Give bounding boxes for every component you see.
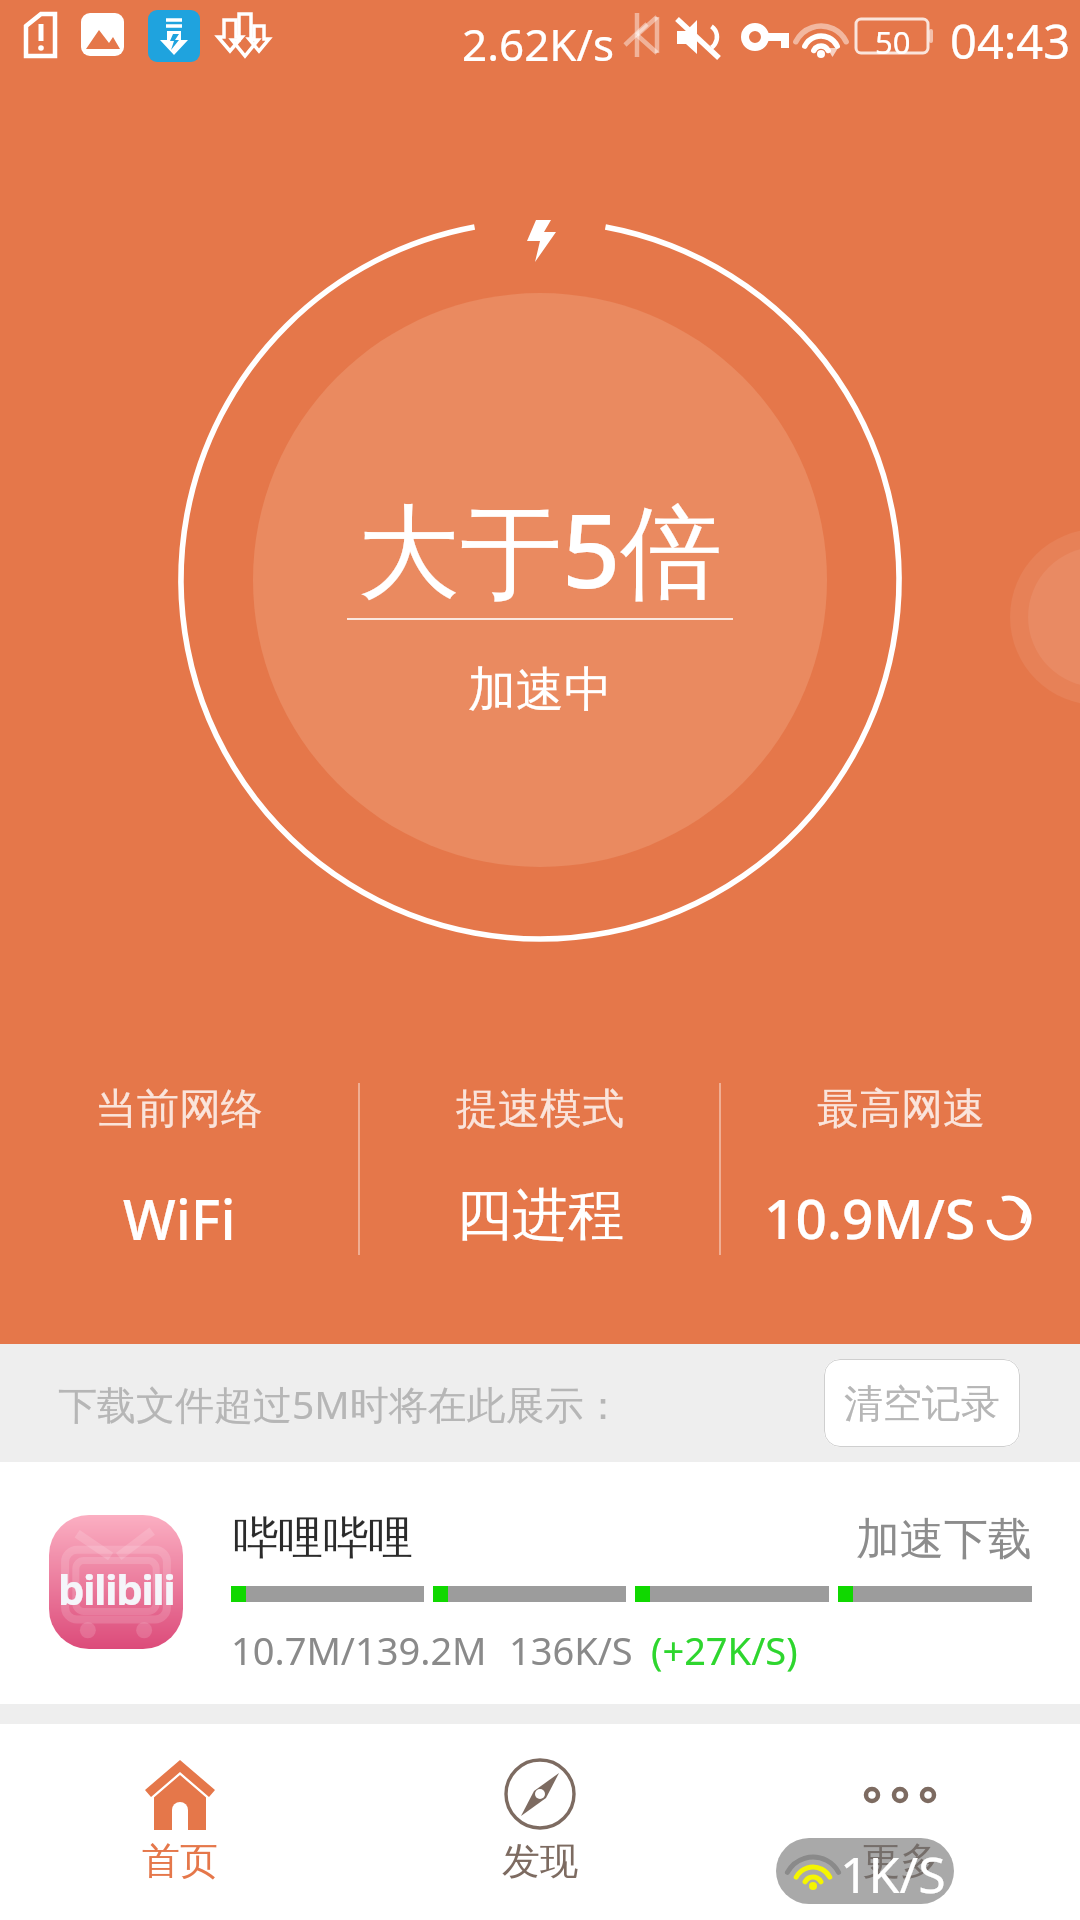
staticText: 发现 <box>502 1837 578 1885</box>
staticText: WiFi <box>123 1180 236 1256</box>
staticText: 四进程 <box>456 1180 624 1251</box>
button[interactable]: 清空记录 <box>824 1359 1020 1447</box>
staticText: 1K/S <box>840 1840 946 1906</box>
staticText: (+27K/S) <box>651 1624 798 1676</box>
staticText: 10.7M/139.2M <box>231 1624 487 1676</box>
staticText: 50 <box>875 21 911 63</box>
staticText: 下载文件超过5M时将在此展示： <box>58 1377 623 1430</box>
staticText: 加速中 <box>468 660 612 720</box>
button[interactable]: 更多 <box>720 1724 1080 1920</box>
staticText: 10.9M/S <box>764 1180 976 1255</box>
button[interactable]: 发现 <box>360 1724 720 1920</box>
staticText: 当前网络 <box>95 1083 263 1136</box>
staticText: 加速下载 <box>856 1512 1032 1567</box>
staticText: 提速模式 <box>456 1083 624 1136</box>
staticText: 更多 <box>862 1837 938 1885</box>
button[interactable]: 首页 <box>0 1724 360 1920</box>
staticText: 大于5倍 <box>358 479 723 618</box>
button[interactable]: 加速下载 <box>856 1512 1032 1567</box>
staticText: 哔哩哔哩 <box>233 1510 413 1567</box>
button[interactable]: Boost speed dial <box>253 293 827 867</box>
staticText: 2.62K/s <box>462 14 614 74</box>
button[interactable]: bilibili <box>0 1462 1080 1704</box>
other: Network speed <box>776 1838 954 1904</box>
staticText: 清空记录 <box>844 1379 1000 1428</box>
staticText: 04:43 <box>950 9 1071 73</box>
staticText: 最高网速 <box>817 1083 985 1136</box>
staticText: 首页 <box>142 1837 218 1885</box>
staticText: bilibili <box>58 1560 175 1617</box>
staticText: 136K/S <box>509 1624 633 1676</box>
